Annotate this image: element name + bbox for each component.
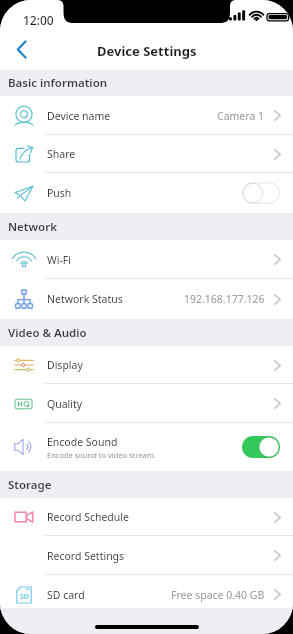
button[interactable]: Wi-Fi: [0, 240, 293, 279]
button[interactable]: Back: [3, 31, 40, 68]
staticText: Quality: [47, 397, 83, 411]
button[interactable]: Turn on: [242, 182, 280, 204]
button[interactable]: Encode Sound: [0, 423, 293, 471]
staticText: Basic information: [8, 75, 108, 91]
staticText: Video & Audio: [8, 325, 87, 341]
button[interactable]: Share: [0, 135, 293, 173]
button[interactable]: Network Status: [0, 279, 293, 319]
button[interactable]: Push: [0, 173, 293, 213]
staticText: Wi-Fi: [47, 253, 72, 267]
staticText: Encode Sound: [47, 435, 118, 449]
button[interactable]: Device name: [0, 96, 293, 135]
staticText: Push: [47, 186, 72, 200]
button[interactable]: SD: [0, 575, 293, 614]
staticText: Display: [47, 358, 83, 372]
button[interactable]: Quality: [0, 384, 293, 423]
button[interactable]: Turn off: [242, 436, 280, 458]
staticText: Free space 0.40 GB: [171, 588, 265, 602]
staticText: Network: [8, 219, 57, 235]
staticText: SD: [20, 592, 29, 602]
staticText: 12:00: [23, 12, 54, 28]
staticText: Record Schedule: [47, 510, 129, 524]
staticText: SD card: [47, 588, 85, 602]
button[interactable]: Record Schedule: [0, 498, 293, 536]
staticText: Share: [47, 147, 76, 161]
button[interactable]: Display: [0, 346, 293, 384]
staticText: Record Settings: [47, 549, 125, 563]
staticText: Encode sound to video stream.: [47, 450, 156, 460]
staticText: Camera 1: [217, 109, 265, 123]
staticText: Network Status: [47, 292, 123, 306]
staticText: Device name: [47, 109, 111, 123]
button[interactable]: Record Settings: [0, 536, 293, 575]
staticText: Device Settings: [97, 42, 197, 60]
staticText: Storage: [8, 477, 52, 493]
staticText: 192.168.177.126: [184, 292, 265, 306]
